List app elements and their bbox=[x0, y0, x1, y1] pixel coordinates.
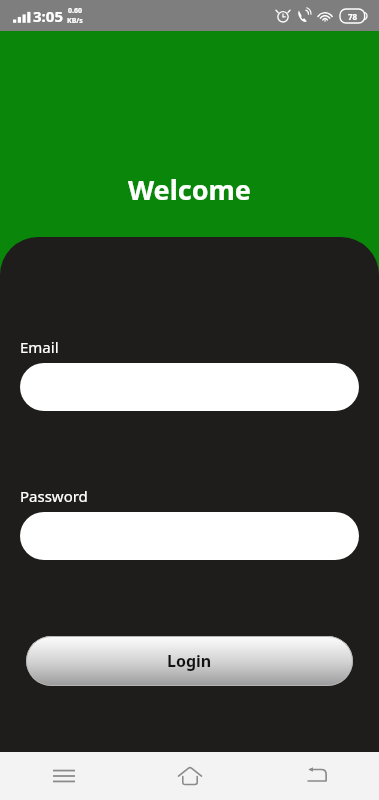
button[interactable] bbox=[20, 512, 359, 560]
staticText: Email bbox=[20, 337, 59, 357]
staticText: Welcome bbox=[128, 171, 251, 208]
staticText: 3:05 bbox=[33, 6, 63, 26]
staticText: Password bbox=[20, 486, 88, 506]
staticText: KB/s bbox=[67, 16, 83, 26]
button[interactable]: Login bbox=[26, 636, 353, 686]
staticText: Login bbox=[167, 650, 212, 672]
staticText: 0.60 bbox=[68, 6, 82, 16]
staticText: 78 bbox=[348, 11, 358, 22]
button[interactable]: Home bbox=[127, 752, 253, 800]
button[interactable]: Recent apps bbox=[0, 752, 127, 800]
button[interactable] bbox=[20, 363, 359, 411]
button[interactable]: Back bbox=[253, 752, 379, 800]
